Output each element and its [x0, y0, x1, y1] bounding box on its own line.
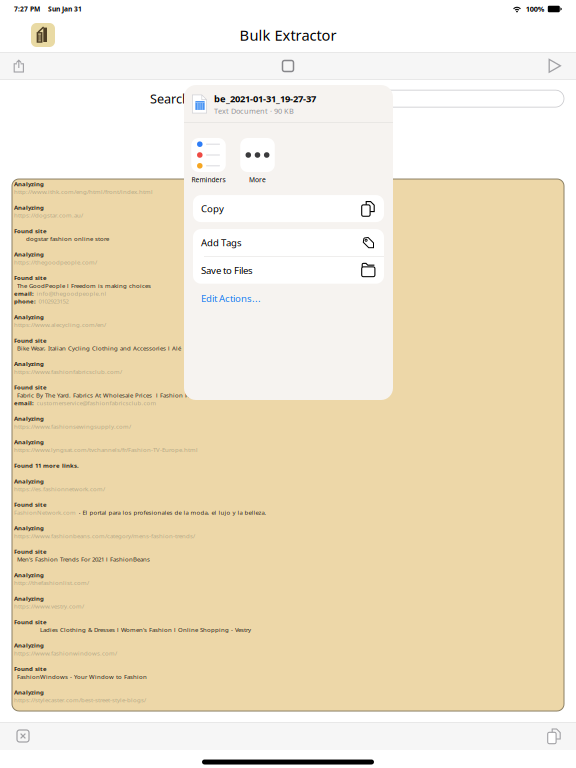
staticText: More: [249, 175, 266, 184]
staticText: customerservice@fashionfabricsclub.com: [36, 399, 156, 407]
staticText: Analyzing: [14, 180, 44, 188]
staticText: Search: [150, 90, 190, 107]
staticText: Analyzing: [14, 360, 44, 368]
staticText: Copy: [201, 202, 224, 215]
staticText: Analyzing: [14, 688, 44, 696]
button[interactable]: Clear log: [10, 723, 36, 749]
staticText: Text Document · 90 KB: [214, 106, 294, 116]
staticText: Analyzing: [14, 313, 44, 321]
staticText: 100%: [526, 4, 545, 14]
staticText: Found 11 more links.: [14, 461, 79, 469]
staticText: - El portal para los profesionales de la…: [78, 508, 266, 516]
staticText: https://dogstar.com.au/: [14, 211, 83, 219]
button[interactable]: Copy log: [543, 723, 566, 749]
staticText: email:: [14, 399, 34, 407]
staticText: https://www.fashionsewingsupply.com/: [14, 422, 131, 430]
staticText: dogstar fashion online store: [26, 235, 109, 243]
staticText: Found site: [14, 665, 47, 673]
staticText: https://www.fashionwindows.com/: [14, 649, 117, 657]
staticText: https://es.fashionnetwork.com/: [14, 485, 105, 493]
staticText: Analyzing: [14, 594, 44, 602]
button[interactable]: Stop extraction: [276, 54, 299, 77]
staticText: 7:27 PM: [14, 4, 40, 14]
staticText: Analyzing: [14, 571, 44, 579]
staticText: Edit Actions...: [201, 292, 261, 305]
staticText: Analyzing: [14, 641, 44, 649]
staticText: https://www.fashionfabricsclub.com/: [14, 367, 122, 376]
staticText: Found site: [14, 618, 47, 626]
button[interactable]: More: [233, 138, 282, 184]
button[interactable]: Start extraction: [541, 56, 568, 76]
staticText: Analyzing: [14, 524, 44, 532]
staticText: info@thegoodpeople.nl: [36, 289, 106, 297]
button[interactable]: Add Tags: [193, 229, 384, 256]
staticText: email:: [14, 289, 34, 297]
staticText: http://thefashionlist.com/: [14, 579, 89, 587]
staticText: Fabric By The Yard. Fabrics At Wholesale…: [17, 391, 221, 399]
button[interactable]: Bulk Extractor app: [26, 18, 60, 52]
staticText: Men's Fashion Trends For 2021 l FashionB…: [17, 555, 150, 563]
staticText: https://www.alecycling.com/en/: [14, 321, 106, 329]
staticText: Reminders: [191, 175, 225, 184]
staticText: https://stylecaster.com/best-street-styl…: [14, 696, 146, 704]
staticText: Save to Files: [201, 264, 253, 277]
staticText: https://www.fashionbeans.com/category/me…: [14, 532, 195, 540]
staticText: Found site: [14, 227, 47, 235]
staticText: http://www.ithk.com/eng/html/front/index…: [14, 188, 153, 196]
staticText: Sun Jan 31: [48, 4, 82, 14]
staticText: https://www.lyngsat.com/tvchannels/fr/Fa…: [14, 446, 198, 454]
staticText: 0102923152: [38, 297, 68, 305]
button[interactable]: Share: [8, 55, 30, 77]
staticText: Bulk Extractor: [239, 25, 336, 45]
staticText: Add Tags: [201, 236, 242, 249]
staticText: Analyzing: [14, 477, 44, 485]
staticText: Found site: [14, 383, 47, 391]
staticText: Ladies Clothing & Dresses l Women's Fash…: [40, 626, 251, 634]
staticText: FashionNetwork.com: [14, 508, 76, 516]
staticText: https://www.vestry.com/: [14, 602, 84, 610]
staticText: https://thegoodpeople.com/: [14, 258, 97, 266]
staticText: Analyzing: [14, 203, 44, 211]
staticText: Analyzing: [14, 414, 44, 423]
staticText: Found site: [14, 500, 47, 509]
button[interactable]: Reminders: [184, 138, 233, 184]
button[interactable]: Save to Files: [193, 257, 384, 284]
staticText: Found site: [14, 547, 47, 556]
button[interactable]: Edit Actions...: [184, 284, 271, 313]
button[interactable]: Copy: [193, 195, 384, 222]
staticText: Found site: [14, 336, 47, 344]
staticText: Bike Wear, Italian Cycling Clothing and …: [17, 344, 181, 352]
staticText: phone:: [14, 297, 36, 305]
staticText: be_2021-01-31_19-27-37: [214, 92, 316, 105]
staticText: The GoodPeople l Freedom is making choic…: [17, 281, 151, 290]
staticText: FashionWindows - Your Window to Fashion: [17, 672, 147, 681]
staticText: Found site: [14, 274, 47, 282]
staticText: Analyzing: [14, 438, 44, 446]
staticText: Analyzing: [14, 250, 44, 258]
